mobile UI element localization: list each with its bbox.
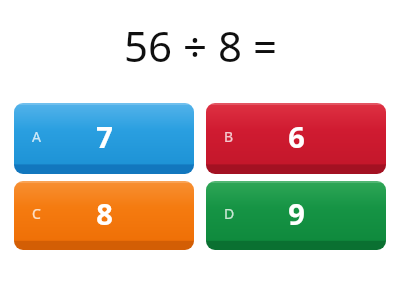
button[interactable]: B [206, 103, 386, 174]
staticText: B [224, 127, 234, 146]
staticText: D [224, 204, 235, 223]
button[interactable]: A [14, 103, 194, 174]
staticText: A [32, 127, 41, 146]
button[interactable]: D [206, 181, 386, 250]
staticText: 7 [96, 117, 113, 156]
button[interactable]: C [14, 181, 194, 250]
staticText: C [32, 204, 41, 223]
staticText: 56 ÷ 8 = [124, 17, 277, 74]
staticText: 6 [288, 117, 305, 156]
staticText: 9 [288, 194, 305, 233]
staticText: 8 [96, 194, 113, 233]
